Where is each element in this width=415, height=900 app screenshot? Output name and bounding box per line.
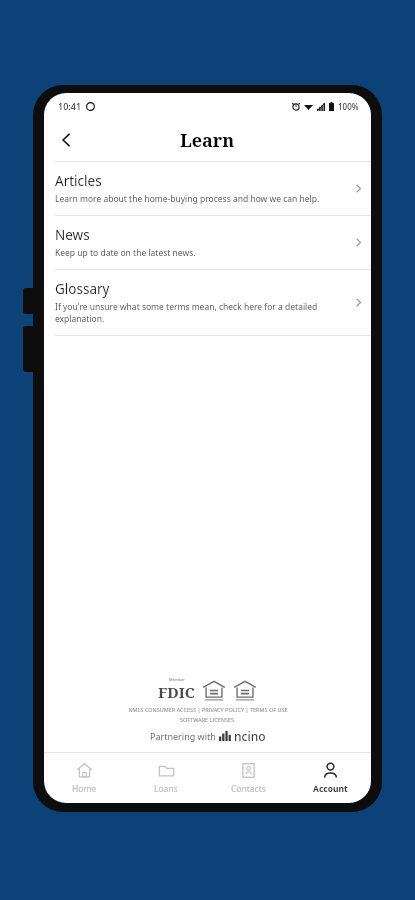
staticText: FDIC <box>158 682 195 702</box>
button[interactable]: News <box>44 216 371 269</box>
staticText: Learn more about the home-buying process… <box>55 193 320 205</box>
staticText: Learn <box>180 128 235 153</box>
staticText: Home <box>72 783 97 795</box>
button[interactable]: Home <box>44 753 125 803</box>
staticText: Account <box>313 783 348 795</box>
button[interactable]: Loans <box>125 753 207 803</box>
staticText: 10:41 <box>58 100 82 112</box>
staticText: If you're unsure what some terms mean, c… <box>55 301 346 325</box>
button[interactable]: Account <box>289 753 371 803</box>
staticText: ncino <box>234 728 266 744</box>
staticText: Glossary <box>55 280 110 298</box>
staticText: Member <box>169 677 185 682</box>
staticText: Partnering with <box>150 730 219 742</box>
staticText: NMLS CONSUMER ACCESS | PRIVACY POLICY | … <box>128 706 288 713</box>
staticText: Loans <box>154 783 178 795</box>
button[interactable]: Articles <box>44 162 371 215</box>
button[interactable]: SOFTWARE LICENSES <box>180 716 235 723</box>
button[interactable]: Back <box>50 123 84 157</box>
staticText: News <box>55 226 90 244</box>
staticText: Contacts <box>231 783 266 795</box>
button[interactable]: Contacts <box>207 753 289 803</box>
staticText: Keep up to date on the latest news. <box>55 247 196 259</box>
button[interactable]: Glossary <box>44 270 371 335</box>
staticText: Articles <box>55 172 102 190</box>
staticText: 100% <box>338 101 359 112</box>
